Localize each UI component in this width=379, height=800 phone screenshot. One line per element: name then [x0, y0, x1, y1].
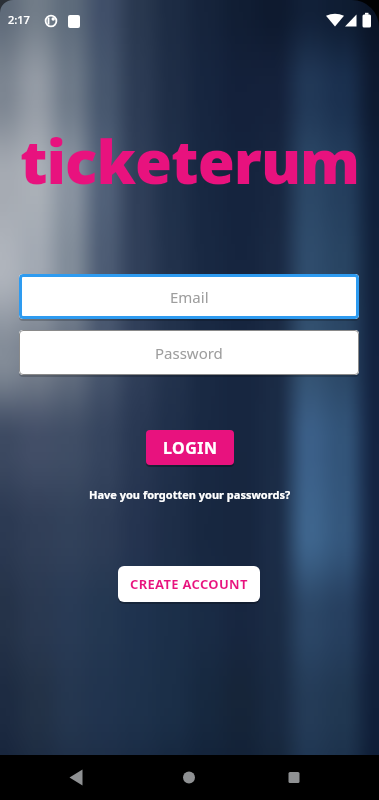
button[interactable]: CREATE ACCOUNT	[118, 566, 260, 602]
button[interactable]: LOGIN	[146, 430, 234, 465]
button[interactable]: Email	[19, 274, 359, 319]
button[interactable]	[62, 763, 90, 791]
button[interactable]: Password	[19, 330, 359, 375]
button[interactable]	[280, 763, 308, 791]
staticText: Password	[155, 343, 223, 363]
staticText: 2:17	[8, 12, 30, 27]
staticText: CREATE ACCOUNT	[130, 575, 248, 593]
staticText: LOGIN	[163, 437, 218, 459]
staticText: Have you forgotten your passwords?	[89, 487, 291, 502]
button[interactable]	[175, 763, 203, 791]
staticText: ticketerum	[20, 120, 360, 202]
staticText: Email	[170, 287, 209, 307]
